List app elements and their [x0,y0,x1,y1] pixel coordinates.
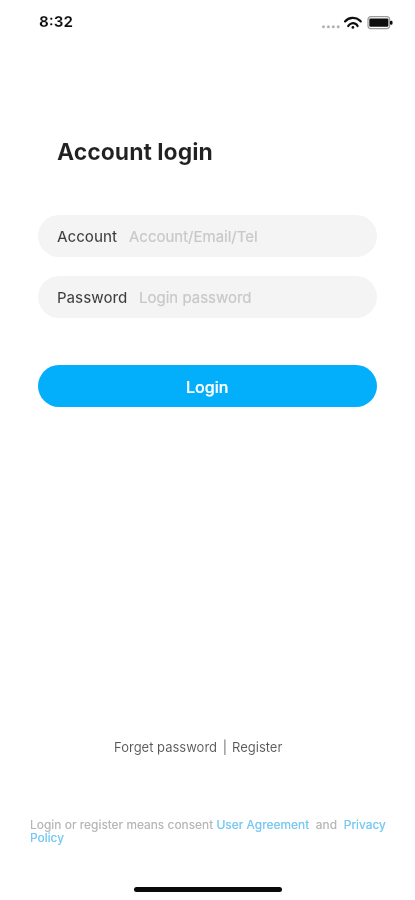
button[interactable]: Password [38,276,377,318]
staticText: Account [57,227,118,245]
staticText: 8:32 [39,12,73,30]
staticText: Login password [139,288,252,306]
staticText: Login or register means consent User Agr… [30,817,397,845]
staticText: Forget password [114,739,218,755]
button[interactable]: Login [38,365,377,407]
staticText: Account/Email/Tel [129,227,258,245]
staticText: Login [186,377,229,396]
button[interactable]: Forget password [113,739,219,755]
button[interactable]: Privacy Policy [344,820,390,834]
button[interactable]: User Agreement [216,820,299,834]
staticText: Account login [57,138,213,166]
staticText: Password [57,288,128,306]
staticText: | [219,739,231,755]
staticText: Register [232,739,283,755]
button[interactable]: Register [231,739,284,755]
button[interactable]: Account [38,215,377,257]
